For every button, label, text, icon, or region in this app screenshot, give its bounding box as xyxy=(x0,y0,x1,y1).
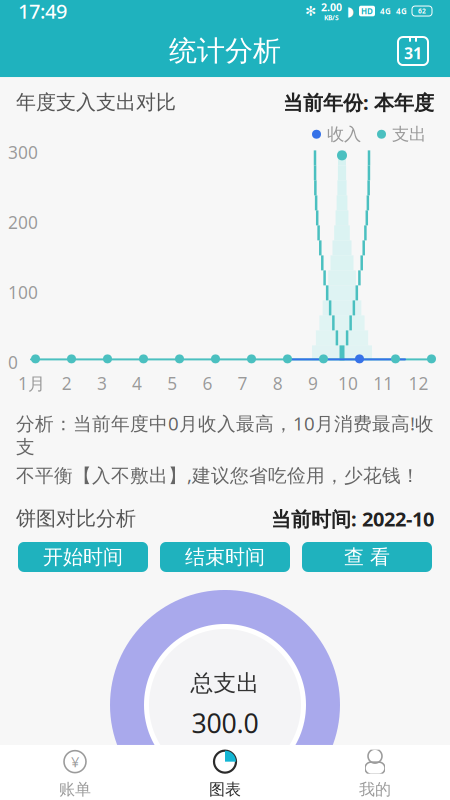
staticText: 8 xyxy=(273,372,283,395)
staticText: 300.0 xyxy=(191,705,258,741)
staticText: 我的 xyxy=(359,780,391,799)
staticText: 饼图对比分析 xyxy=(16,506,136,531)
staticText: 当前时间: 2022-10 xyxy=(271,505,434,532)
staticText: ¥ xyxy=(71,752,79,771)
staticText: 开始时间 xyxy=(43,545,123,569)
staticText: 4G xyxy=(396,6,407,16)
button[interactable]: 开始时间 xyxy=(18,542,148,572)
staticText: 不平衡【入不敷出】,建议您省吃俭用，少花钱！ xyxy=(16,463,420,487)
staticText: 100 xyxy=(8,281,38,304)
staticText: 0 xyxy=(8,351,18,374)
staticText: 收入 xyxy=(327,124,361,145)
staticText: 200 xyxy=(8,211,38,234)
button[interactable]: ¥ xyxy=(0,745,150,800)
staticText: HD xyxy=(361,6,373,16)
staticText: 12 xyxy=(408,372,428,395)
staticText: 当前年份: 本年度 xyxy=(283,89,434,116)
staticText: 分析：当前年度中0月收入最高，10月消费最高!收支 xyxy=(16,411,434,459)
staticText: 2 xyxy=(62,372,72,395)
staticText: 11 xyxy=(373,372,393,395)
staticText: 10 xyxy=(338,372,358,395)
staticText: 总支出 xyxy=(190,669,259,697)
staticText: 3 xyxy=(97,372,107,395)
staticText: 6 xyxy=(202,372,212,395)
staticText: 支出 xyxy=(392,124,426,145)
staticText: ✻ xyxy=(305,3,316,19)
staticText: 年度支入支出对比 xyxy=(16,90,176,115)
staticText: 4G xyxy=(380,6,391,16)
staticText: 9 xyxy=(308,372,318,395)
button[interactable]: Calendar xyxy=(398,37,428,65)
staticText: 账单 xyxy=(59,780,91,799)
staticText: 2.00 xyxy=(321,0,342,14)
staticText: KB/S xyxy=(324,13,339,22)
staticText: 300 xyxy=(8,141,38,164)
staticText: 图表 xyxy=(209,780,241,799)
staticText: 统计分析 xyxy=(169,34,281,68)
staticText: 7 xyxy=(238,372,248,395)
button[interactable]: 我的 xyxy=(300,745,450,800)
button[interactable]: 结束时间 xyxy=(160,542,290,572)
staticText: 62 xyxy=(418,7,426,15)
staticText: 4 xyxy=(132,372,142,395)
staticText: 查 看 xyxy=(344,545,390,569)
staticText: 结束时间 xyxy=(185,545,265,569)
button[interactable]: 查 看 xyxy=(302,542,432,572)
staticText: 5 xyxy=(167,372,177,395)
staticText: ◗ xyxy=(347,3,354,19)
staticText: 1月 xyxy=(18,372,45,395)
staticText: 17:49 xyxy=(18,0,67,24)
button[interactable]: 图表 xyxy=(150,745,300,800)
staticText: 31 xyxy=(404,42,422,64)
